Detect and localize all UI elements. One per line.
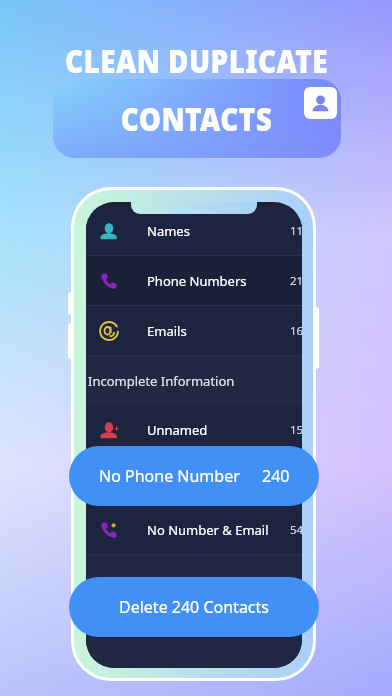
staticText: CONTACTS [120, 97, 273, 141]
staticText: No Phone Number [147, 471, 262, 489]
staticText: 113 [290, 223, 302, 239]
button[interactable]: Contacts app icon [304, 87, 337, 119]
button[interactable]: Unnamed [86, 405, 302, 455]
staticText: 218 [290, 273, 302, 289]
staticText: 15 [290, 422, 302, 438]
staticText: Delete 240 Contacts [119, 596, 269, 618]
staticText: Unnamed [147, 421, 208, 439]
staticText: Incomplete Information [88, 372, 235, 390]
staticText: Phone Numbers [147, 272, 247, 290]
button[interactable]: No Number & Email [86, 505, 302, 555]
button[interactable]: Phone Numbers [86, 256, 302, 306]
staticText: 164 [290, 323, 302, 339]
button[interactable]: Emails [86, 306, 302, 356]
staticText: No Number & Email [147, 521, 269, 539]
staticText: Emails [147, 322, 187, 340]
staticText: No Phone Number [99, 465, 240, 487]
staticText: 54 [290, 522, 302, 538]
staticText: 240 [262, 465, 290, 487]
button[interactable]: No Phone Number [69, 446, 319, 506]
staticText: CLEAN DUPLICATE [65, 39, 328, 83]
button[interactable]: Names [86, 206, 302, 256]
button[interactable]: No Phone Number [86, 455, 302, 505]
staticText: Names [147, 222, 190, 240]
button[interactable]: Delete 240 Contacts [69, 577, 319, 637]
